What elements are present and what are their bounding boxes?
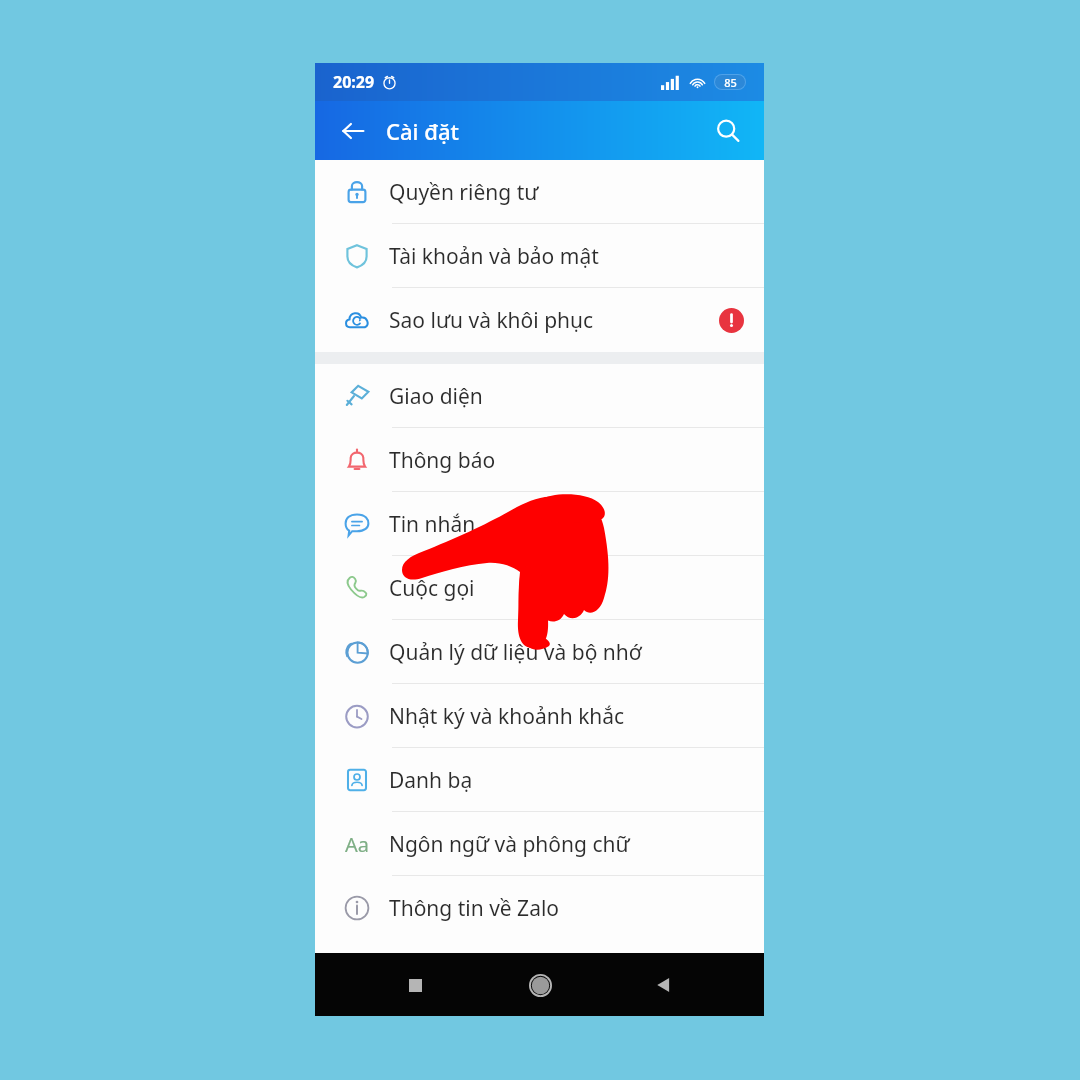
staticText: Sao lưu và khôi phục <box>389 306 719 335</box>
button[interactable]: Danh bạ <box>315 748 764 812</box>
button[interactable]: Giao diện <box>315 364 764 428</box>
staticText: Nhật ký và khoảnh khắc <box>389 702 744 731</box>
staticText: Thông báo <box>389 446 744 475</box>
button[interactable]: Tài khoản và bảo mật <box>315 224 764 288</box>
button[interactable]: Thông tin về Zalo <box>315 876 764 940</box>
staticText: Thông tin về Zalo <box>389 894 744 923</box>
staticText: Ngôn ngữ và phông chữ <box>389 830 744 859</box>
staticText: Tài khoản và bảo mật <box>389 242 744 271</box>
button[interactable]: Aa <box>315 812 764 876</box>
staticText: 20:29 <box>333 71 375 93</box>
staticText: Cài đặt <box>386 116 459 146</box>
staticText: Quyền riêng tư <box>389 178 744 207</box>
button[interactable]: Tin nhắn <box>315 492 764 556</box>
staticText: Quản lý dữ liệu và bộ nhớ <box>389 638 744 667</box>
staticText: 85 <box>724 75 737 90</box>
button[interactable]: Nhật ký và khoảnh khắc <box>315 684 764 748</box>
button[interactable]: Back <box>640 961 688 1009</box>
button[interactable]: Quyền riêng tư <box>315 160 764 224</box>
button[interactable]: Search <box>704 107 752 155</box>
staticText: Aa <box>345 831 369 858</box>
staticText: Danh bạ <box>389 766 744 795</box>
button[interactable]: Cuộc gọi <box>315 556 764 620</box>
button[interactable]: Sao lưu và khôi phục <box>315 288 764 352</box>
button[interactable]: Back <box>329 107 377 155</box>
button[interactable]: Home <box>516 961 564 1009</box>
staticText: Giao diện <box>389 382 744 411</box>
button[interactable]: Thông báo <box>315 428 764 492</box>
staticText: Tin nhắn <box>389 510 744 539</box>
button[interactable]: Recent apps <box>391 961 439 1009</box>
staticText: Cuộc gọi <box>389 574 744 603</box>
button[interactable]: Quản lý dữ liệu và bộ nhớ <box>315 620 764 684</box>
